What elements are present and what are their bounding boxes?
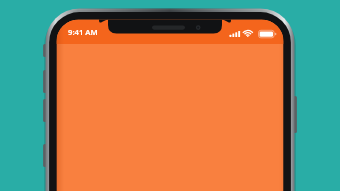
button[interactable]: iPhone mockup with orange app screen <box>0 0 340 191</box>
